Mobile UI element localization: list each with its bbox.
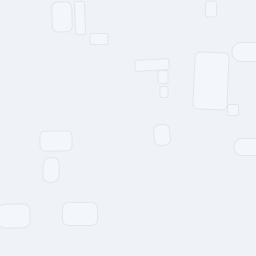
button[interactable]: Tile 1 bbox=[52, 2, 72, 32]
button[interactable]: Tile 4 bbox=[205, 1, 216, 17]
button[interactable]: Tile 14 bbox=[234, 138, 256, 155]
button[interactable]: Tile 10 bbox=[227, 104, 238, 115]
button[interactable]: Tile 15 bbox=[0, 204, 30, 228]
button[interactable]: Tile 12 bbox=[43, 157, 59, 182]
button[interactable]: Tile 13 bbox=[154, 124, 170, 145]
button[interactable]: Tile 8 bbox=[160, 86, 168, 97]
button[interactable]: Tile 5 bbox=[232, 42, 256, 61]
button[interactable]: Tile 9 bbox=[194, 52, 228, 109]
button[interactable]: Tile 3 bbox=[90, 33, 108, 44]
button[interactable]: Tile 16 bbox=[62, 202, 97, 225]
button[interactable]: Tile 11 bbox=[40, 131, 72, 151]
button[interactable]: Tile 6 bbox=[135, 59, 169, 70]
button[interactable]: Tile 2 bbox=[75, 1, 85, 34]
button[interactable]: Tile 7 bbox=[158, 70, 168, 83]
